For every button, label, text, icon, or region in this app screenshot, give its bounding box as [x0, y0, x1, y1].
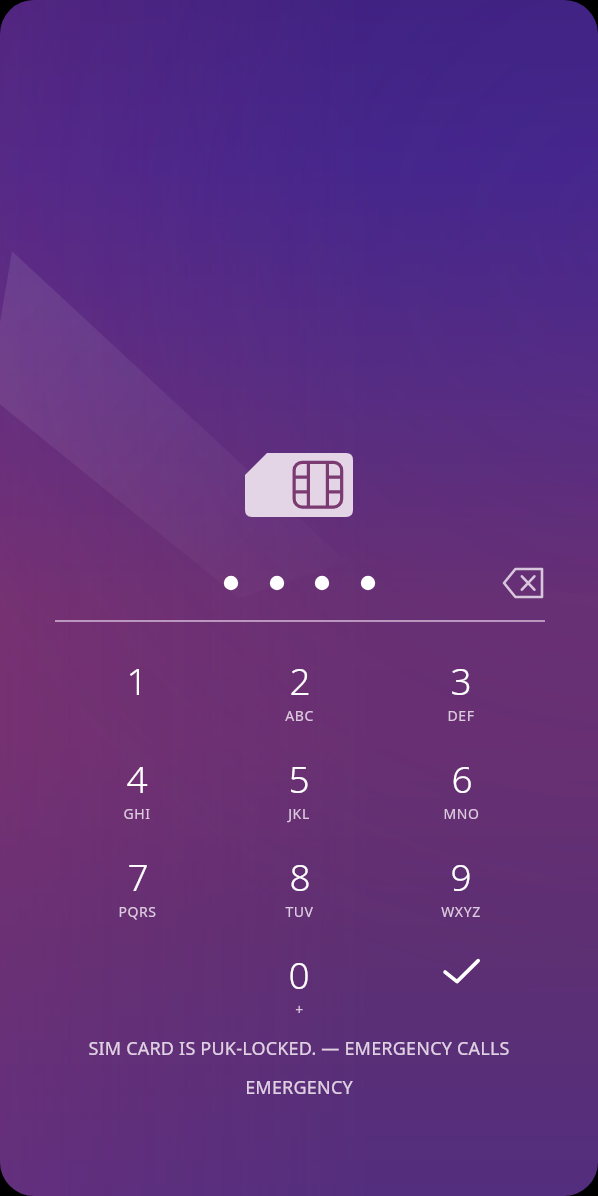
staticText: 0: [288, 949, 310, 999]
staticText: PQRS: [118, 902, 157, 921]
staticText: 4: [126, 753, 148, 803]
button[interactable]: 8: [239, 851, 359, 943]
staticText: GHI: [123, 804, 151, 823]
button[interactable]: 3: [401, 655, 521, 747]
button[interactable]: 9: [401, 851, 521, 943]
button[interactable]: Backspace: [495, 557, 551, 609]
button[interactable]: 1: [77, 655, 197, 747]
staticText: 9: [450, 851, 472, 901]
button[interactable]: 4: [77, 753, 197, 845]
staticText: 2: [289, 655, 311, 705]
staticText: DEF: [447, 706, 475, 725]
staticText: MNO: [443, 804, 480, 823]
staticText: 5: [288, 753, 310, 803]
staticText: ABC: [285, 706, 314, 725]
staticText: EMERGENCY: [245, 1075, 353, 1100]
staticText: JKL: [288, 804, 310, 823]
staticText: TUV: [285, 902, 314, 921]
button[interactable]: 0: [239, 949, 359, 1041]
button[interactable]: 7: [77, 851, 197, 943]
button[interactable]: 2: [239, 655, 359, 747]
staticText: +: [295, 1000, 304, 1019]
button[interactable]: EMERGENCY: [245, 1075, 353, 1100]
button[interactable]: Confirm: [401, 949, 521, 1041]
button[interactable]: 6: [401, 753, 521, 845]
staticText: 3: [450, 655, 472, 705]
staticText: WXYZ: [441, 902, 481, 921]
button[interactable]: 5: [239, 753, 359, 845]
staticText: 7: [127, 851, 149, 901]
staticText: SIM CARD IS PUK-LOCKED. — EMERGENCY CALL…: [88, 1036, 510, 1061]
other: SIM card: [245, 453, 353, 517]
staticText: 1: [126, 655, 148, 705]
staticText: 6: [451, 753, 473, 803]
staticText: 8: [289, 851, 311, 901]
